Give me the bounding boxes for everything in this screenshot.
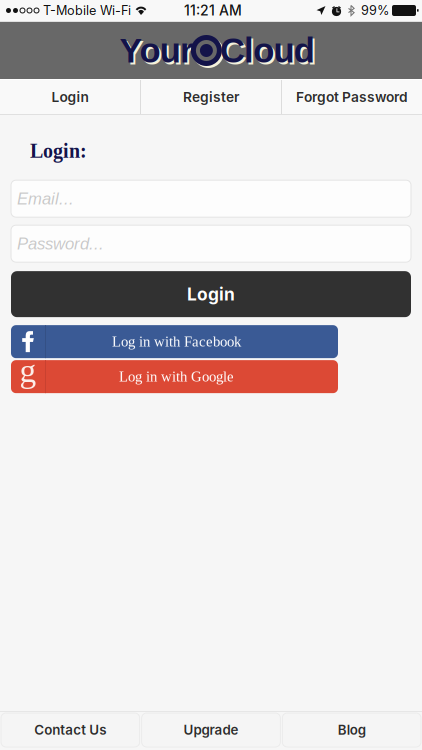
staticText: Forgot Password [296, 89, 408, 105]
staticText: T-Mobile Wi-Fi [39, 3, 135, 18]
staticText: Email... [17, 189, 74, 208]
staticText: g [19, 352, 36, 389]
button[interactable]: Register [141, 80, 281, 114]
button[interactable]: Blog [282, 713, 421, 747]
staticText: Log in with Google [119, 368, 234, 385]
staticText: Register [183, 89, 239, 105]
staticText: Blog [338, 722, 366, 738]
staticText: Login: [30, 140, 87, 162]
staticText: Login [51, 89, 88, 105]
staticText: Contact Us [34, 722, 106, 738]
staticText: Your [119, 31, 193, 70]
button[interactable]: Contact Us [1, 713, 140, 747]
staticText: 99% [361, 3, 389, 18]
staticText: Upgrade [183, 722, 238, 738]
button[interactable]: Login [11, 271, 411, 317]
staticText: Login [187, 284, 235, 305]
staticText: 11:21 AM [184, 2, 242, 19]
staticText: Password... [17, 234, 104, 253]
button[interactable]: g [11, 360, 338, 393]
staticText: Cloud [220, 31, 315, 70]
button[interactable]: Log in with Facebook [11, 325, 338, 358]
button[interactable]: Forgot Password [282, 80, 422, 114]
staticText: Cloud [222, 33, 317, 72]
button[interactable]: Login [0, 80, 140, 114]
staticText: Your [121, 33, 195, 72]
button[interactable]: Upgrade [142, 713, 280, 747]
staticText: Log in with Facebook [112, 333, 241, 350]
